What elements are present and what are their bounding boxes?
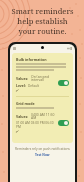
staticText: Level:	[16, 83, 26, 88]
staticText: Bulb information	[16, 57, 47, 62]
staticText: Grid mode	[16, 101, 35, 106]
button[interactable]: Toggle Grid mode	[58, 120, 69, 126]
button[interactable]: Toggle Bulb information	[58, 80, 69, 86]
staticText: Default	[28, 84, 39, 88]
staticText: On (second interval)	[31, 74, 58, 82]
staticText: Values:	[16, 114, 29, 119]
staticText: help establish	[17, 16, 68, 26]
staticText: Reminders rely on push notifications	[15, 147, 70, 151]
button[interactable]: Test Now	[35, 153, 50, 157]
staticText: your routine.	[18, 26, 67, 36]
staticText: Smart reminders	[11, 6, 74, 16]
staticText: Values:	[16, 76, 29, 81]
staticText: 0400 AM 11:50 AM	[31, 112, 58, 120]
staticText: Test Now	[35, 153, 50, 157]
staticText: 01:00 AM 03:00 PM 06:30 PM	[16, 121, 58, 129]
